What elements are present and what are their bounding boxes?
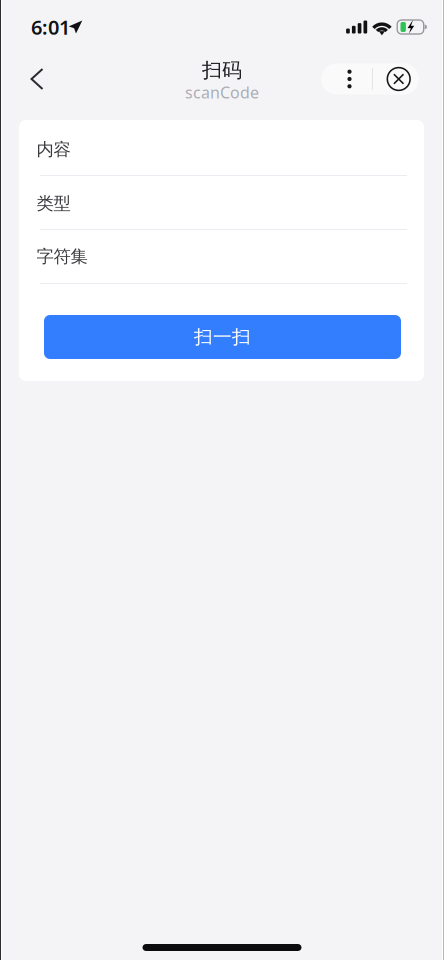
staticText: 内容 [37,139,71,160]
button[interactable]: Close [373,63,419,94]
staticText: 类型 [37,193,71,214]
staticText: 字符集 [37,246,88,267]
button[interactable]: Back [0,57,60,101]
staticText: scanCode [185,82,259,103]
staticText: 扫码 [202,58,242,83]
button[interactable]: More options [321,63,372,94]
staticText: 6:01 [31,14,70,40]
staticText: 扫一扫 [194,325,251,348]
button[interactable]: 扫一扫 [44,315,401,359]
